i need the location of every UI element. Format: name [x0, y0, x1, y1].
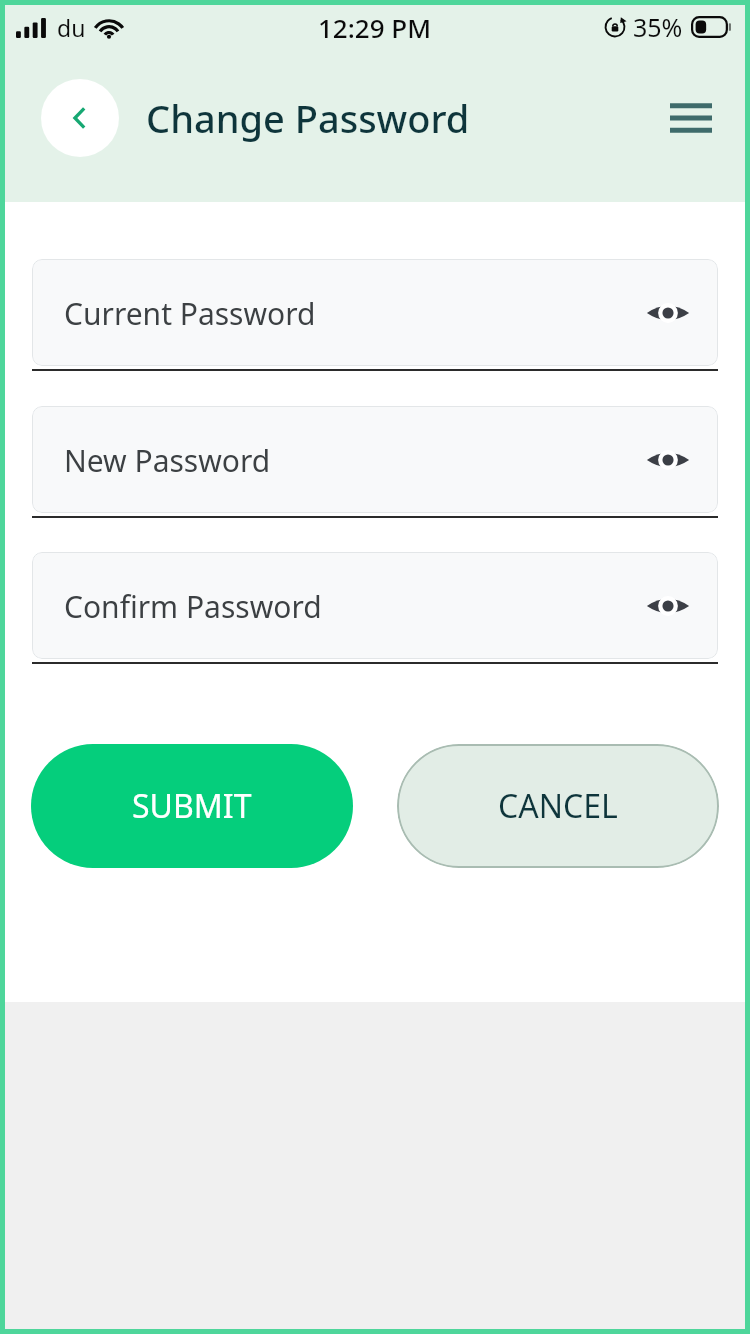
staticText: Current Password [64, 293, 316, 334]
button[interactable]: CANCEL [397, 744, 719, 868]
button[interactable]: Menu [663, 90, 719, 146]
button[interactable]: New Password [32, 406, 718, 518]
button[interactable]: Current Password [32, 259, 718, 371]
button[interactable]: Back [41, 79, 119, 157]
staticText: SUBMIT [132, 784, 252, 828]
staticText: New Password [64, 440, 271, 481]
staticText: du [57, 12, 86, 43]
staticText: CANCEL [498, 784, 618, 828]
staticText: Confirm Password [64, 586, 322, 627]
button[interactable]: Show password [640, 432, 696, 488]
button[interactable]: SUBMIT [31, 744, 353, 868]
staticText: 35% [633, 10, 683, 44]
staticText: Change Password [146, 92, 470, 144]
button[interactable]: Show password [640, 578, 696, 634]
button[interactable]: Confirm Password [32, 552, 718, 664]
button[interactable]: Show password [640, 285, 696, 341]
staticText: 12:29 PM [318, 10, 432, 45]
